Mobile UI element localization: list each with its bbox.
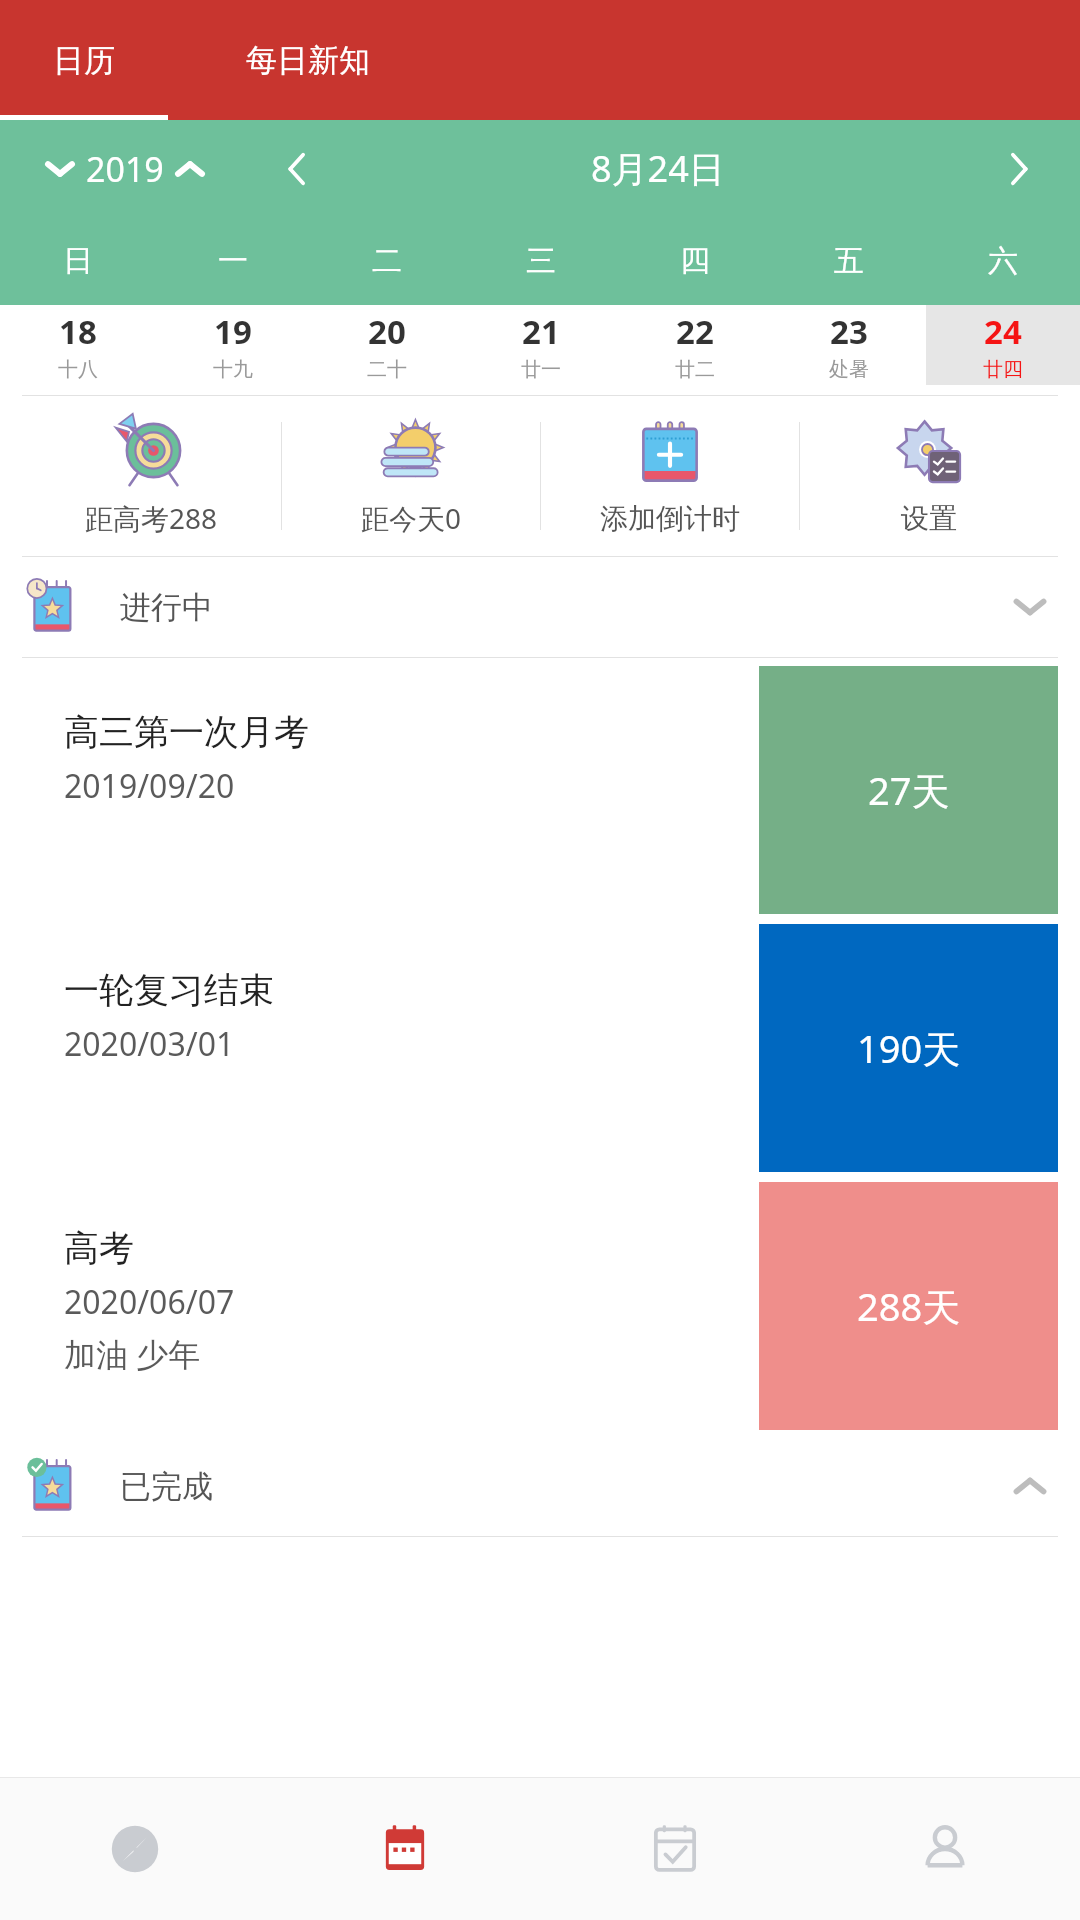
button[interactable]: Previous year	[34, 143, 216, 195]
staticText: 十八	[58, 357, 98, 382]
other: Previous year	[34, 143, 86, 195]
staticText: 21	[522, 309, 560, 354]
staticText: 距高考288	[85, 499, 218, 537]
staticText: 2019	[86, 146, 164, 192]
button[interactable]: 18	[0, 305, 155, 385]
button[interactable]: 20	[310, 305, 464, 385]
button[interactable]: 高三第一次月考	[22, 666, 1058, 914]
staticText: 三	[526, 242, 556, 280]
staticText: 一	[218, 242, 248, 280]
staticText: 日历	[53, 41, 115, 80]
staticText: 设置	[901, 501, 957, 536]
button[interactable]: Previous day	[262, 134, 332, 204]
button[interactable]: 19	[155, 305, 310, 385]
staticText: 处暑	[829, 357, 869, 382]
button[interactable]: 进行中	[22, 557, 1058, 657]
button[interactable]: 23	[772, 305, 926, 385]
button[interactable]: Tasks	[540, 1778, 810, 1920]
staticText: 18	[59, 309, 97, 354]
staticText: 22	[676, 309, 714, 354]
staticText: 19	[214, 309, 252, 354]
staticText: 四	[680, 242, 710, 280]
staticText: 二十	[367, 357, 407, 382]
button[interactable]: Calendar	[270, 1778, 540, 1920]
staticText: 日	[63, 242, 93, 280]
staticText: 进行中	[120, 588, 213, 627]
staticText: 190天	[857, 1022, 961, 1074]
staticText: 8月24日	[591, 144, 725, 193]
button[interactable]: 距今天0	[282, 396, 540, 556]
staticText: 二	[372, 242, 402, 280]
button[interactable]: 22	[618, 305, 772, 385]
button[interactable]: 24	[926, 305, 1080, 385]
staticText: 2019/09/20	[64, 764, 235, 808]
staticText: 添加倒计时	[600, 501, 740, 536]
button[interactable]: 距高考288	[22, 396, 281, 556]
button[interactable]: 已完成	[22, 1436, 1058, 1536]
staticText: 每日新知	[246, 41, 370, 80]
button[interactable]: Profile	[810, 1778, 1080, 1920]
staticText: 27天	[868, 764, 950, 816]
button[interactable]: 高考	[22, 1182, 1058, 1430]
staticText: 高考	[64, 1226, 134, 1270]
staticText: 20	[368, 309, 406, 354]
staticText: 廿四	[983, 357, 1023, 382]
staticText: 距今天0	[361, 499, 462, 537]
staticText: 2020/06/07	[64, 1280, 235, 1324]
button[interactable]: Discover	[0, 1778, 270, 1920]
button[interactable]: 一轮复习结束	[22, 924, 1058, 1172]
staticText: 一轮复习结束	[64, 968, 274, 1012]
staticText: 288天	[857, 1280, 961, 1332]
button[interactable]: 添加倒计时	[541, 396, 799, 556]
staticText: 廿一	[521, 357, 561, 382]
staticText: 24	[984, 309, 1022, 354]
other: Next year	[164, 143, 216, 195]
other: Toggle section	[1002, 579, 1058, 635]
other: Toggle section	[1002, 1458, 1058, 1514]
button[interactable]: 21	[464, 305, 618, 385]
button[interactable]: 日历	[0, 0, 168, 120]
button[interactable]: Next day	[984, 134, 1054, 204]
staticText: 六	[988, 242, 1018, 280]
staticText: 已完成	[120, 1467, 213, 1506]
button[interactable]: 每日新知	[168, 0, 448, 120]
button[interactable]: 设置	[800, 396, 1058, 556]
staticText: 五	[834, 242, 864, 280]
staticText: 加油 少年	[64, 1332, 201, 1376]
staticText: 2020/03/01	[64, 1022, 235, 1066]
staticText: 十九	[213, 357, 253, 382]
staticText: 廿二	[675, 357, 715, 382]
staticText: 高三第一次月考	[64, 710, 309, 754]
staticText: 23	[830, 309, 868, 354]
button[interactable]: 8月24日	[332, 144, 984, 193]
